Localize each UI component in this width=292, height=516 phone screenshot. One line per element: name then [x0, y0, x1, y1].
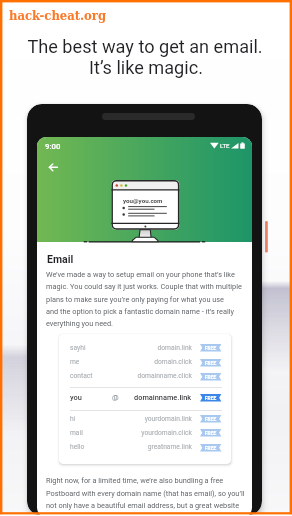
- staticText: Email: [47, 253, 74, 265]
- staticText: everything you need.: [46, 319, 114, 328]
- staticText: domain.link: [52, 344, 192, 352]
- staticText: me: [70, 358, 80, 366]
- staticText: mail: [70, 429, 83, 437]
- staticText: sayhi: [70, 344, 86, 352]
- staticText: magic. You could say it just works. Coup…: [46, 282, 242, 291]
- staticText: FREE: [200, 416, 221, 422]
- button[interactable]: [59, 388, 231, 410]
- staticText: contact: [70, 372, 93, 380]
- staticText: Right now, for a limited time, we’re als…: [46, 476, 224, 485]
- staticText: not only have a beautiful email address,…: [46, 501, 240, 510]
- staticText: FREE: [200, 360, 221, 366]
- staticText: FREE: [200, 345, 221, 351]
- staticText: FREE: [200, 445, 221, 451]
- staticText: hi: [70, 415, 76, 423]
- staticText: domain.click: [52, 358, 192, 366]
- staticText: Postboard with every domain name (that h…: [46, 489, 245, 498]
- staticText: 9:00: [45, 142, 61, 151]
- staticText: plans to make sure you’re only paying fo…: [46, 295, 225, 304]
- staticText: and the option to pick a fantastic domai…: [46, 307, 234, 316]
- button[interactable]: [59, 355, 231, 369]
- staticText: domainname.click: [52, 372, 192, 380]
- button[interactable]: [59, 426, 231, 440]
- staticText: yourdomain.link: [52, 415, 192, 423]
- staticText: FREE: [200, 430, 221, 436]
- staticText: @: [112, 393, 119, 402]
- staticText: FREE: [200, 374, 221, 380]
- button[interactable]: [59, 440, 231, 454]
- staticText: yourdomain.click: [52, 429, 192, 437]
- staticText: greatname.link: [52, 443, 192, 451]
- button[interactable]: Back: [41, 156, 64, 179]
- staticText: hack-cheat.org: [9, 8, 107, 23]
- button[interactable]: [59, 341, 231, 355]
- staticText: We’ve made a way to setup email on your …: [46, 270, 235, 279]
- staticText: The best way to get an email.: [5, 36, 285, 57]
- staticText: LTE: [220, 142, 230, 149]
- staticText: you: [70, 393, 82, 402]
- staticText: you@you.com: [123, 197, 163, 204]
- staticText: too, all for one simple low price that n…: [46, 514, 212, 516]
- staticText: FREE: [200, 395, 221, 401]
- button[interactable]: [59, 412, 231, 426]
- staticText: It’s like magic.: [6, 57, 286, 78]
- button[interactable]: [59, 370, 231, 384]
- staticText: hello: [70, 443, 85, 451]
- staticText: domainname.link: [134, 393, 192, 402]
